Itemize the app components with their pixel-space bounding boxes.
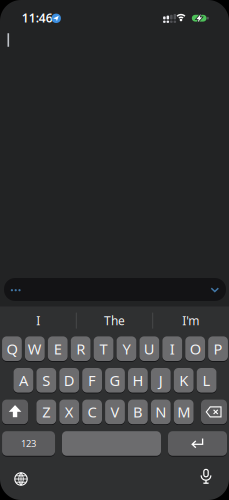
button[interactable]: K xyxy=(174,368,194,393)
staticText: 11:46 xyxy=(22,10,53,26)
staticText: A xyxy=(19,371,28,390)
button[interactable] xyxy=(4,278,28,301)
staticText: F xyxy=(88,371,96,390)
button[interactable] xyxy=(2,400,28,424)
staticText: H xyxy=(132,371,143,390)
button[interactable]: M xyxy=(174,400,194,424)
button[interactable]: B xyxy=(128,400,148,424)
button[interactable]: I xyxy=(162,336,182,361)
button[interactable]: U xyxy=(139,336,159,361)
staticText: R xyxy=(76,339,85,358)
button[interactable] xyxy=(62,431,161,456)
staticText: X xyxy=(65,402,74,422)
staticText: E xyxy=(54,339,62,358)
staticText: S xyxy=(42,371,50,390)
button[interactable]: N xyxy=(151,400,171,424)
staticText: Y xyxy=(122,339,130,358)
button[interactable]: H xyxy=(128,368,148,393)
staticText: L xyxy=(203,371,211,390)
button[interactable]: W xyxy=(25,336,45,361)
staticText: M xyxy=(177,402,190,422)
button[interactable]: The xyxy=(77,307,151,335)
staticText: C xyxy=(88,402,97,422)
button[interactable]: Y xyxy=(116,336,136,361)
staticText: V xyxy=(110,402,119,422)
button[interactable]: Z xyxy=(36,400,56,424)
button[interactable] xyxy=(9,467,33,491)
button[interactable]: 123 xyxy=(2,431,55,456)
staticText: Q xyxy=(6,339,17,358)
button[interactable]: G xyxy=(105,368,125,393)
staticText: N xyxy=(155,402,166,422)
staticText: I xyxy=(170,339,175,358)
staticText: B xyxy=(133,402,143,422)
button[interactable]: J xyxy=(151,368,171,393)
staticText: I xyxy=(36,313,40,328)
staticText: The xyxy=(104,313,125,328)
button[interactable] xyxy=(201,278,228,301)
button[interactable]: F xyxy=(82,368,102,393)
button[interactable]: V xyxy=(105,400,125,424)
button[interactable]: P xyxy=(208,336,228,361)
button[interactable]: X xyxy=(59,400,79,424)
button[interactable]: T xyxy=(94,336,113,361)
button[interactable]: D xyxy=(59,368,79,393)
staticText: J xyxy=(159,371,163,390)
staticText: P xyxy=(214,339,223,358)
staticText: U xyxy=(144,339,155,358)
staticText: K xyxy=(179,371,188,390)
button[interactable]: S xyxy=(36,368,56,393)
button[interactable]: I'm xyxy=(154,307,228,335)
staticText: I'm xyxy=(182,313,199,328)
staticText: G xyxy=(109,371,120,390)
button[interactable] xyxy=(194,465,218,489)
button[interactable]: Q xyxy=(2,336,22,361)
button[interactable]: L xyxy=(197,368,216,393)
button[interactable] xyxy=(168,431,227,456)
button[interactable]: A xyxy=(13,368,33,393)
button[interactable]: I xyxy=(1,307,75,335)
staticText: D xyxy=(64,371,75,390)
button[interactable]: O xyxy=(185,336,205,361)
staticText: Z xyxy=(42,402,50,422)
button[interactable]: C xyxy=(82,400,102,424)
button[interactable]: E xyxy=(48,336,68,361)
staticText: W xyxy=(28,339,42,358)
staticText: 123 xyxy=(21,437,36,450)
staticText: O xyxy=(190,339,201,358)
button[interactable] xyxy=(201,400,227,424)
staticText: T xyxy=(99,339,107,358)
button[interactable]: R xyxy=(71,336,90,361)
